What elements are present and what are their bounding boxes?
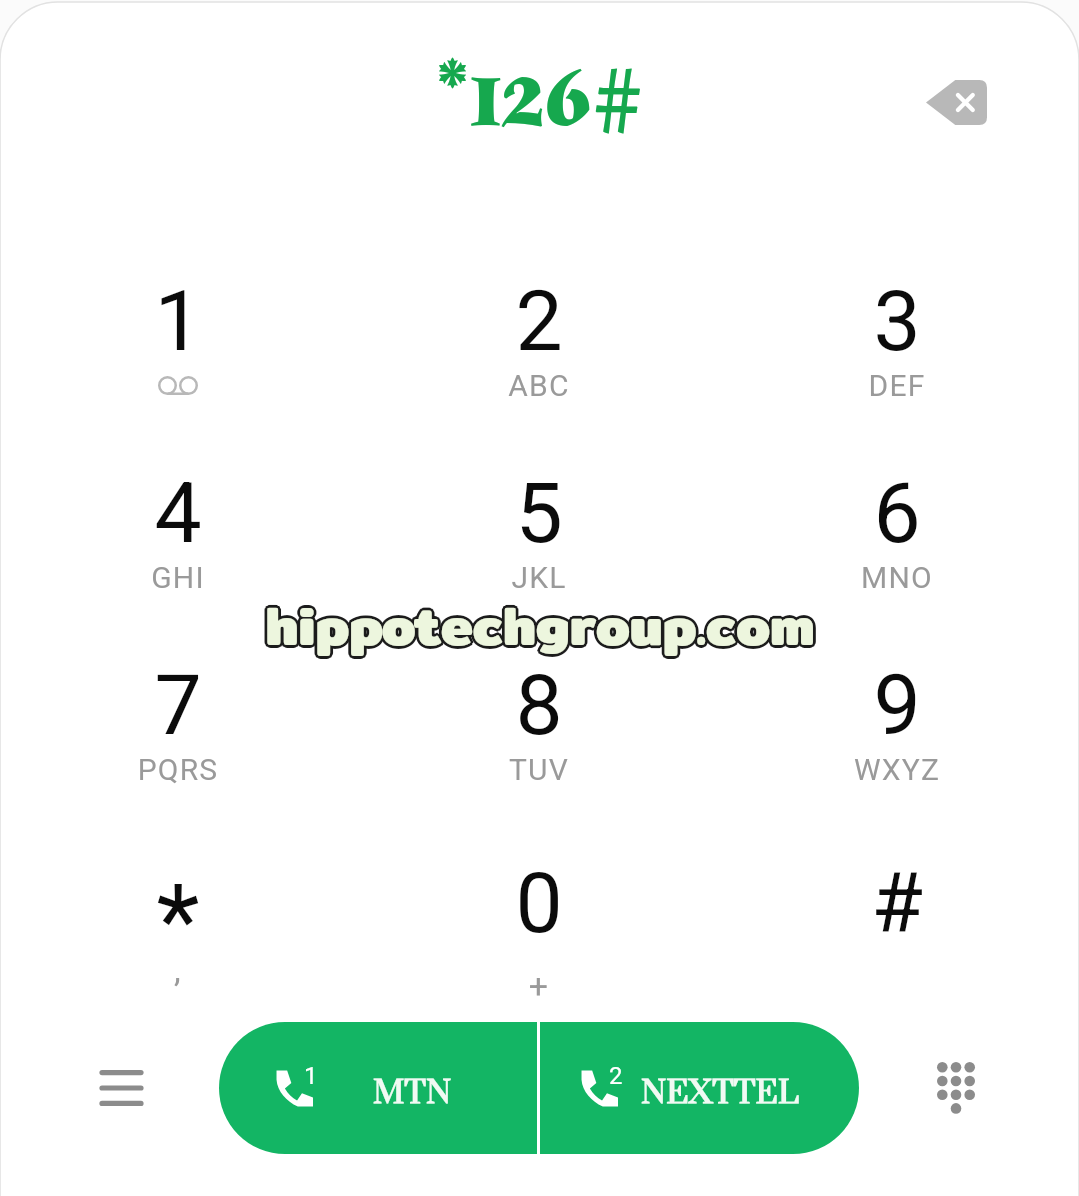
staticText: 7: [28, 656, 328, 754]
button[interactable]: 7: [28, 656, 328, 846]
staticText: hippotechgroup.com: [263, 585, 813, 670]
staticText: NEXTTEL: [641, 1072, 799, 1114]
staticText: 1: [304, 1062, 318, 1090]
button[interactable]: 6: [747, 464, 1047, 654]
staticText: 2: [389, 272, 689, 370]
button[interactable]: *: [28, 854, 328, 1044]
staticText: *: [28, 862, 328, 979]
staticText: hippotechgroup.com: [263, 581, 813, 666]
button[interactable]: 1: [28, 272, 328, 462]
staticText: 0: [389, 854, 689, 952]
staticText: +: [389, 966, 689, 1006]
staticText: hippotechgroup.com: [265, 580, 815, 665]
staticText: 9: [747, 656, 1047, 754]
staticText: hippotechgroup.com: [265, 586, 815, 671]
staticText: DEF: [747, 368, 1047, 403]
staticText: #: [747, 854, 1047, 952]
button[interactable]: 8: [389, 656, 689, 846]
staticText: MTN: [373, 1072, 452, 1114]
button[interactable]: 2: [389, 272, 689, 462]
staticText: hippotechgroup.com: [267, 585, 817, 670]
button[interactable]: #: [747, 854, 1047, 1044]
staticText: TUV: [389, 752, 689, 787]
button[interactable]: *126#: [0, 2, 1079, 192]
staticText: 8: [389, 656, 689, 754]
button[interactable]: Backspace: [910, 56, 1002, 148]
staticText: GHI: [28, 560, 328, 595]
staticText: ABC: [389, 368, 689, 403]
staticText: 2: [609, 1062, 623, 1090]
staticText: PQRS: [28, 752, 328, 787]
staticText: 5: [389, 464, 689, 562]
staticText: *126#: [435, 36, 644, 158]
button[interactable]: 9: [747, 656, 1047, 846]
staticText: 4: [28, 464, 328, 562]
staticText: hippotechgroup.com: [265, 583, 815, 668]
button[interactable]: 4: [28, 464, 328, 654]
button[interactable]: Open menu: [61, 1028, 181, 1148]
staticText: 3: [747, 272, 1047, 370]
staticText: hippotechgroup.com: [262, 583, 812, 668]
staticText: hippotechgroup.com: [267, 581, 817, 666]
button[interactable]: Show dialpad: [896, 1027, 1016, 1147]
button[interactable]: 5: [389, 464, 689, 654]
staticText: WXYZ: [747, 752, 1047, 787]
staticText: JKL: [389, 560, 689, 595]
staticText: hippotechgroup.com: [268, 583, 818, 668]
button[interactable]: 0: [389, 854, 689, 1044]
button[interactable]: 1: [219, 1022, 537, 1154]
button[interactable]: 2: [540, 1022, 859, 1154]
staticText: ,: [28, 950, 328, 990]
button[interactable]: 3: [747, 272, 1047, 462]
staticText: MNO: [747, 560, 1047, 595]
staticText: 1: [28, 272, 328, 370]
staticText: 6: [747, 464, 1047, 562]
